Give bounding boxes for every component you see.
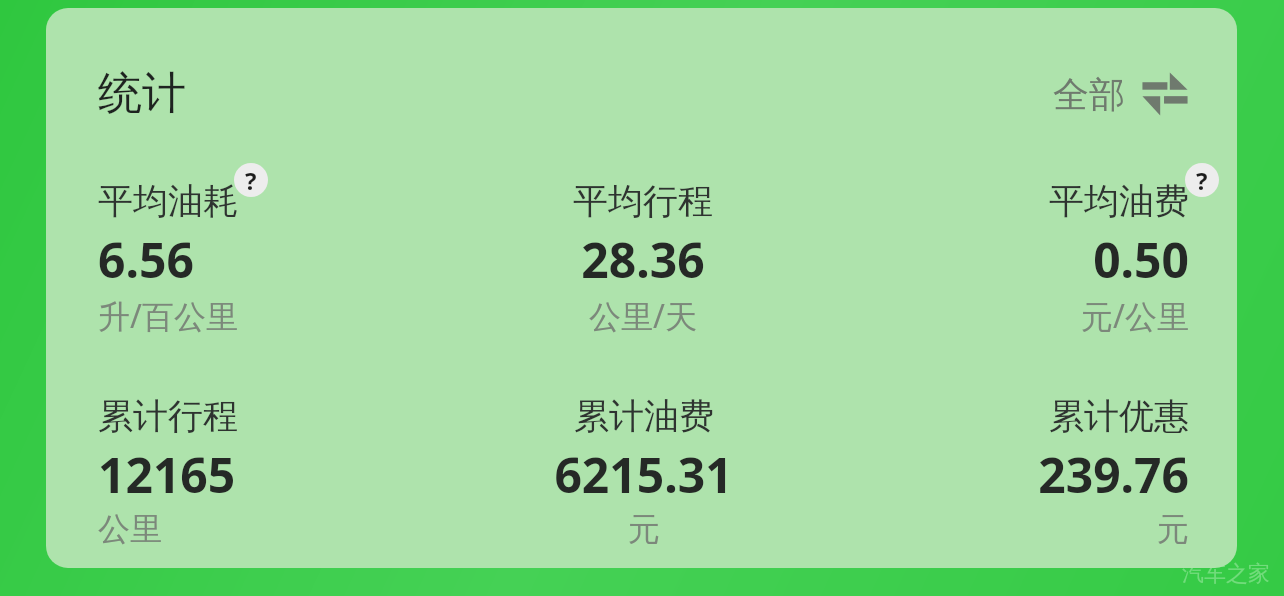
staticText: 0.50 bbox=[1093, 227, 1189, 292]
staticText: 全部 bbox=[1053, 72, 1125, 117]
staticText: 元 bbox=[1157, 509, 1189, 549]
button[interactable]: 累计油费 bbox=[554, 394, 733, 549]
button[interactable]: 全部 bbox=[1053, 70, 1189, 118]
staticText: 元/公里 bbox=[1081, 294, 1189, 338]
staticText: 累计优惠 bbox=[1049, 394, 1189, 438]
staticText: 平均油费 bbox=[1049, 179, 1189, 223]
staticText: 汽车之家 bbox=[1182, 560, 1270, 588]
staticText: 元 bbox=[628, 509, 660, 549]
button[interactable]: 累计行程 bbox=[98, 394, 238, 549]
staticText: 公里 bbox=[98, 509, 162, 549]
staticText: 累计油费 bbox=[574, 394, 714, 438]
button[interactable]: 累计优惠 bbox=[1038, 394, 1189, 549]
button[interactable]: 平均行程 bbox=[573, 179, 713, 338]
staticText: 公里/天 bbox=[589, 294, 697, 338]
staticText: 升/百公里 bbox=[98, 294, 238, 338]
staticText: 平均油耗 bbox=[98, 179, 238, 223]
staticText: 累计行程 bbox=[98, 394, 238, 438]
staticText: 239.76 bbox=[1038, 442, 1189, 507]
button[interactable]: 平均油费 bbox=[1049, 179, 1189, 338]
staticText: ? bbox=[245, 164, 257, 197]
staticText: 统计 bbox=[98, 66, 186, 121]
staticText: 12165 bbox=[98, 442, 236, 507]
button[interactable]: 说明 bbox=[234, 163, 268, 197]
button[interactable]: 说明 bbox=[1185, 163, 1219, 197]
staticText: 6.56 bbox=[98, 227, 194, 292]
other: 切换排序 bbox=[1141, 70, 1189, 118]
staticText: 平均行程 bbox=[573, 179, 713, 223]
staticText: 6215.31 bbox=[554, 442, 733, 507]
button[interactable]: 平均油耗 bbox=[98, 179, 238, 338]
staticText: ? bbox=[1196, 164, 1208, 197]
staticText: 28.36 bbox=[581, 227, 705, 292]
